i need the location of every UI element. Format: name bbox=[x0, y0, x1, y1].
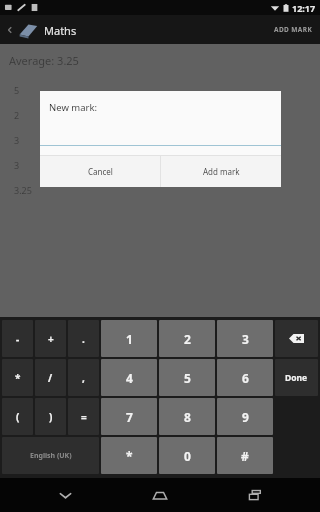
staticText: 2 bbox=[14, 109, 20, 121]
button[interactable]: . bbox=[68, 320, 99, 357]
button[interactable]: 3.25 bbox=[0, 177, 320, 202]
button[interactable]: = bbox=[68, 398, 99, 435]
button[interactable]: Back bbox=[35, 478, 95, 512]
staticText: 8 bbox=[184, 409, 191, 425]
staticText: 6 bbox=[242, 370, 249, 386]
button[interactable]: / bbox=[35, 359, 66, 396]
button[interactable]: * bbox=[101, 437, 157, 474]
button[interactable]: 3 bbox=[0, 127, 320, 152]
button[interactable]: Recent apps bbox=[225, 478, 285, 512]
staticText: Average: 3.25 bbox=[9, 53, 79, 68]
staticText: 7 bbox=[126, 409, 133, 425]
staticText: 5 bbox=[14, 84, 20, 96]
staticText: Add mark bbox=[203, 166, 240, 177]
button[interactable]: , bbox=[68, 359, 99, 396]
staticText: 1 bbox=[126, 331, 133, 347]
button[interactable]: * bbox=[2, 359, 33, 396]
button[interactable]: ) bbox=[35, 398, 66, 435]
button[interactable]: Done bbox=[275, 359, 318, 396]
staticText: - bbox=[16, 332, 20, 346]
button[interactable]: Delete bbox=[275, 320, 318, 357]
button[interactable]: 8 bbox=[159, 398, 215, 435]
staticText: 3 bbox=[14, 159, 20, 171]
staticText: Done bbox=[285, 372, 308, 384]
button[interactable]: Cancel bbox=[40, 156, 160, 187]
button[interactable]: - bbox=[2, 320, 33, 357]
staticText: ADD MARK bbox=[274, 25, 313, 34]
button[interactable]: Add mark bbox=[161, 156, 281, 187]
staticText: ) bbox=[49, 410, 53, 424]
button[interactable]: 4 bbox=[101, 359, 157, 396]
staticText: Maths bbox=[44, 23, 77, 38]
button[interactable]: 1 bbox=[101, 320, 157, 357]
staticText: 3 bbox=[14, 134, 20, 146]
staticText: * bbox=[126, 448, 133, 464]
button[interactable]: 2 bbox=[159, 320, 215, 357]
button[interactable]: ADD MARK bbox=[267, 15, 320, 44]
staticText: 3 bbox=[242, 331, 249, 347]
staticText: Cancel bbox=[88, 166, 113, 177]
button[interactable]: 5 bbox=[0, 77, 320, 102]
staticText: English (UK) bbox=[30, 451, 72, 461]
staticText: / bbox=[48, 371, 53, 385]
staticText: # bbox=[241, 448, 249, 464]
button[interactable]: 3 bbox=[217, 320, 273, 357]
button[interactable]: 5 bbox=[159, 359, 215, 396]
button[interactable]: 7 bbox=[101, 398, 157, 435]
staticText: 2 bbox=[184, 331, 191, 347]
staticText: 3.25 bbox=[14, 184, 32, 196]
staticText: = bbox=[81, 410, 87, 424]
staticText: 5 bbox=[184, 370, 191, 386]
button[interactable]: + bbox=[35, 320, 66, 357]
button[interactable]: English (UK) bbox=[2, 437, 99, 474]
button[interactable]: 0 bbox=[159, 437, 215, 474]
button[interactable]: 3 bbox=[0, 152, 320, 177]
button[interactable]: ( bbox=[2, 398, 33, 435]
staticText: 9 bbox=[242, 409, 249, 425]
button[interactable]: 6 bbox=[217, 359, 273, 396]
staticText: 4 bbox=[126, 370, 133, 386]
staticText: 12:17 bbox=[292, 2, 316, 14]
staticText: + bbox=[48, 332, 54, 346]
button[interactable]: # bbox=[217, 437, 273, 474]
staticText: New mark: bbox=[49, 101, 98, 114]
button[interactable]: Navigate up bbox=[3, 17, 17, 43]
button[interactable]: Home bbox=[130, 478, 190, 512]
staticText: . bbox=[82, 332, 85, 346]
staticText: , bbox=[82, 371, 85, 385]
button[interactable]: 9 bbox=[217, 398, 273, 435]
staticText: * bbox=[15, 371, 21, 385]
button[interactable]: 2 bbox=[0, 102, 320, 127]
staticText: 0 bbox=[184, 448, 191, 464]
staticText: ( bbox=[16, 410, 20, 424]
